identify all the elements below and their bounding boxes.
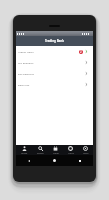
button[interactable]: Alerts [63,145,78,155]
button[interactable]: Urgent Items [16,46,93,57]
staticText: Alerts [68,152,74,155]
button[interactable]: Bank Info [16,79,93,90]
staticText: Trade [53,152,59,155]
staticText: Buy Requests [18,72,34,75]
button[interactable]: Home [16,145,32,155]
staticText: Search [37,152,44,155]
staticText: Bank Info [18,83,30,86]
button[interactable]: Buy Requests [16,68,93,79]
button[interactable]: Back [16,155,41,166]
button[interactable]: Recents [67,155,93,166]
button[interactable]: Home [41,155,67,166]
staticText: Sell Requests [18,61,34,64]
button[interactable]: Search [32,145,48,155]
staticText: 2 [80,50,82,54]
staticText: Trading Bank [45,39,64,43]
button[interactable]: Trade [48,145,63,155]
button[interactable]: Sell Requests [16,57,93,68]
button[interactable]: Trading Bank [16,36,93,46]
staticText: Home [21,152,28,155]
staticText: Urgent Items [18,50,34,53]
staticText: More [83,152,89,155]
button[interactable]: More [78,145,93,155]
